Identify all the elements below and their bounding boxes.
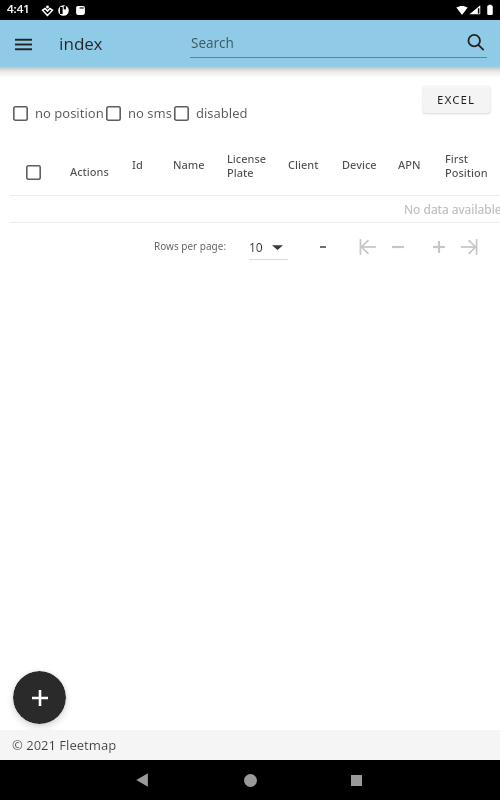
button[interactable]: Home	[230, 760, 270, 800]
staticText: disabled	[196, 104, 248, 122]
staticText: no position	[35, 104, 104, 122]
staticText: Actions	[70, 164, 109, 179]
button[interactable]: no sms	[106, 104, 174, 122]
staticText: Name	[173, 157, 205, 172]
staticText: First Position	[445, 151, 488, 180]
button[interactable]: disabled	[174, 104, 250, 122]
staticText: © 2021 Fleetmap	[12, 736, 117, 754]
button[interactable]: First page	[351, 230, 385, 264]
staticText: 10	[249, 239, 263, 255]
staticText: Id	[132, 157, 143, 172]
button[interactable]: Back	[123, 760, 163, 800]
staticText: License Plate	[227, 151, 267, 180]
button[interactable]: EXCEL	[423, 86, 490, 113]
button[interactable]: Last page	[452, 230, 486, 264]
staticText: EXCEL	[437, 92, 476, 108]
button[interactable]: Select all rows	[26, 165, 41, 180]
button[interactable]: Previous page	[381, 230, 415, 264]
button[interactable]: Open navigation menu	[7, 28, 39, 60]
staticText: Search	[191, 34, 234, 52]
staticText: index	[59, 32, 103, 55]
button[interactable]: Search	[459, 26, 493, 60]
staticText: Client	[288, 157, 319, 172]
staticText: No data available	[404, 201, 500, 217]
button[interactable]: 10	[249, 232, 289, 262]
staticText: Rows per page:	[154, 239, 227, 253]
button[interactable]: Next page	[422, 230, 456, 264]
button[interactable]: Recent apps	[336, 760, 376, 800]
staticText: 4:41	[7, 1, 30, 17]
button[interactable]: Add	[13, 671, 66, 724]
staticText: APN	[398, 157, 421, 172]
button[interactable]: no position	[13, 104, 106, 122]
staticText: Device	[342, 157, 377, 172]
staticText: no sms	[128, 104, 172, 122]
